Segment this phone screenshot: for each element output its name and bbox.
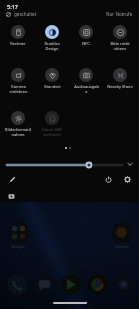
staticText: Audioausgab e [74,84,99,94]
staticText: NFC [82,41,90,46]
button[interactable]: NFC [69,25,103,46]
staticText: Nearby Share [107,84,133,89]
button[interactable]: Google [7,222,29,249]
button[interactable]: Chrome [110,222,132,249]
button[interactable]: Messages [34,274,55,295]
staticText: 5:17 [7,3,18,10]
button[interactable]: Edit tiles [7,174,18,185]
button[interactable]: Standort [35,68,69,89]
staticText: Google [11,244,25,249]
button[interactable]: Chrome [87,274,108,295]
button[interactable]: Daten-SIM wechseln [35,111,69,137]
button[interactable]: Settings [122,174,133,185]
staticText: Standort [44,84,61,89]
staticText: Daten-SIM wechseln [42,127,62,137]
button[interactable]: Brightness [6,158,122,170]
button[interactable]: Camera [113,274,134,295]
staticText: Dunkles Design [44,41,60,51]
staticText: geschaltet [14,11,37,17]
button[interactable]: Power [103,174,114,185]
button[interactable]: Kamera einfahren [1,68,35,94]
button[interactable]: Audioausgab e [69,68,103,94]
button[interactable]: Bildschirmauf nahme [1,111,35,137]
button[interactable]: Bitte nicht stören [103,25,137,51]
staticText: Bildschirmauf nahme [5,127,31,137]
button[interactable]: Expand brightness [125,159,135,169]
button[interactable]: Dunkles Design [35,25,69,51]
button[interactable]: Rechner [1,25,35,46]
staticText: Bitte nicht stören [110,41,130,51]
button[interactable]: Phone [7,274,28,295]
staticText: Chrome [114,244,129,249]
button[interactable]: Play Store [60,274,81,295]
button[interactable]: Nearby Share [103,68,137,89]
staticText: Nur Notrufe [106,11,133,17]
staticText: Kamera einfahren [9,84,28,94]
staticText: Rechner [10,41,26,46]
